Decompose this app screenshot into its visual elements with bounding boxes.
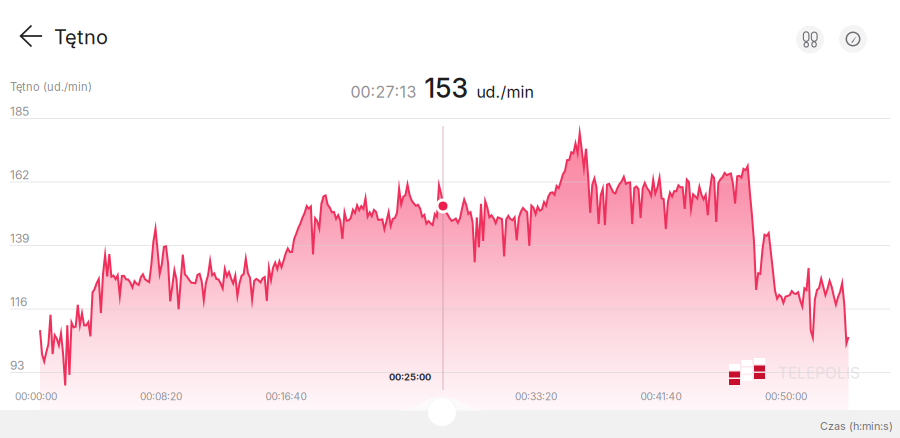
staticText: 00:25:00	[389, 371, 431, 383]
staticText: 00:41:40	[640, 390, 681, 403]
staticText: 185	[10, 104, 29, 119]
staticText: Czas (h:min:s)	[820, 419, 893, 433]
staticText: 00:00:00	[15, 390, 57, 403]
button[interactable]: Pace	[836, 22, 870, 56]
staticText: 162	[10, 168, 29, 182]
staticText: 00:08:20	[140, 390, 182, 403]
staticText: 139	[10, 231, 29, 246]
button[interactable]: Back	[9, 14, 53, 58]
staticText: 00:50:00	[765, 390, 807, 403]
staticText: 116	[10, 295, 27, 309]
staticText: Tętno	[54, 25, 108, 49]
button[interactable]: Steps	[793, 22, 827, 56]
staticText: 93	[10, 358, 24, 373]
staticText: 00:33:20	[515, 390, 557, 403]
staticText: 00:16:40	[265, 390, 306, 403]
staticText: TELEPOLIS	[778, 364, 860, 382]
staticText: 153	[424, 72, 468, 104]
staticText: 00:27:13	[350, 82, 416, 102]
staticText: Tętno (ud./min)	[10, 80, 92, 94]
staticText: ud./min	[476, 82, 533, 102]
